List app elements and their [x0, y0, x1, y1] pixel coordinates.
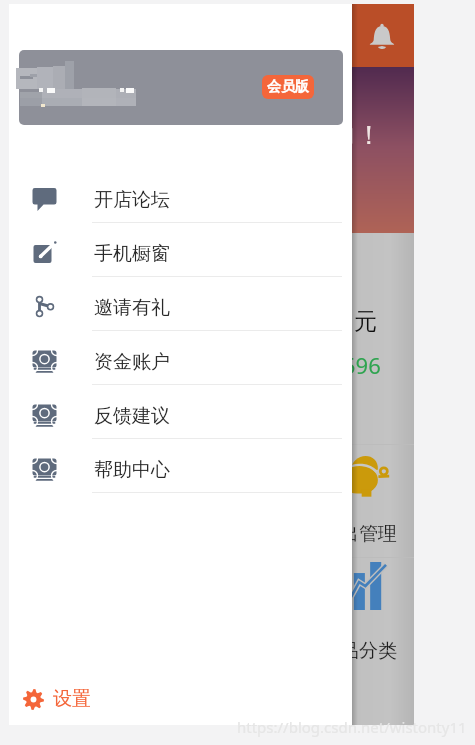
button[interactable]: 会员版: [262, 75, 314, 99]
staticText: 邀请有礼: [94, 296, 170, 320]
button[interactable]: 反馈建议: [9, 385, 352, 439]
button[interactable]: 邀请有礼: [9, 277, 352, 331]
staticText: 帮助中心: [94, 458, 170, 482]
button[interactable]: 手机橱窗: [9, 223, 352, 277]
staticText: 596: [343, 350, 381, 380]
staticText: 手机橱窗: [94, 242, 170, 266]
staticText: 品分类: [340, 639, 397, 663]
button[interactable]: 资金账户: [9, 331, 352, 385]
staticText: 设置: [53, 687, 91, 711]
staticText: 反馈建议: [94, 404, 170, 428]
button[interactable]: 开店论坛: [9, 169, 352, 223]
staticText: 会员版: [267, 78, 309, 96]
staticText: 力！: [330, 119, 382, 152]
staticText: https://blog.csdn.net/wistonty11: [237, 717, 467, 737]
staticText: 开店论坛: [94, 188, 170, 212]
staticText: 出管理: [340, 522, 397, 546]
button[interactable]: 设置: [23, 687, 91, 711]
button[interactable]: Notifications: [362, 16, 402, 56]
staticText: 资金账户: [94, 350, 170, 374]
button[interactable]: 帮助中心: [9, 439, 352, 493]
button[interactable]: 会员版: [19, 50, 343, 125]
staticText: 元: [354, 307, 377, 336]
